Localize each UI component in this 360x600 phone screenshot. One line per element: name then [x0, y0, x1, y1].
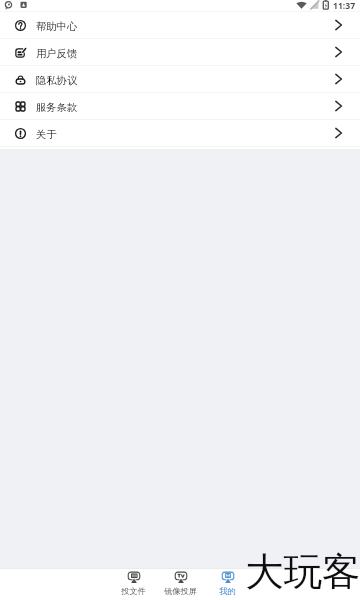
button[interactable]: Cast file [110, 569, 157, 596]
button[interactable]: 用户反馈 [0, 39, 360, 66]
button[interactable]: 关于 [0, 120, 360, 147]
staticText: 镜像投屏 [164, 586, 197, 596]
staticText: 用户反馈 [36, 47, 78, 60]
other: Mine [222, 572, 234, 583]
button[interactable]: 服务条款 [0, 93, 360, 120]
other: Cast file [128, 572, 140, 583]
staticText: 帮助中心 [36, 20, 78, 33]
button[interactable]: 隐私协议 [0, 66, 360, 93]
staticText: 投文件 [121, 586, 146, 596]
staticText: 隐私协议 [36, 74, 78, 87]
staticText: 我的 [219, 586, 236, 596]
staticText: 关于 [36, 128, 57, 141]
button[interactable]: Mine [204, 569, 251, 596]
button[interactable]: 帮助中心 [0, 12, 360, 39]
other: Mirror screen [175, 572, 187, 583]
button[interactable]: Mirror screen [157, 569, 204, 596]
staticText: 11:37 [333, 0, 356, 11]
staticText: 大玩客 [245, 548, 360, 597]
staticText: 服务条款 [36, 101, 78, 114]
